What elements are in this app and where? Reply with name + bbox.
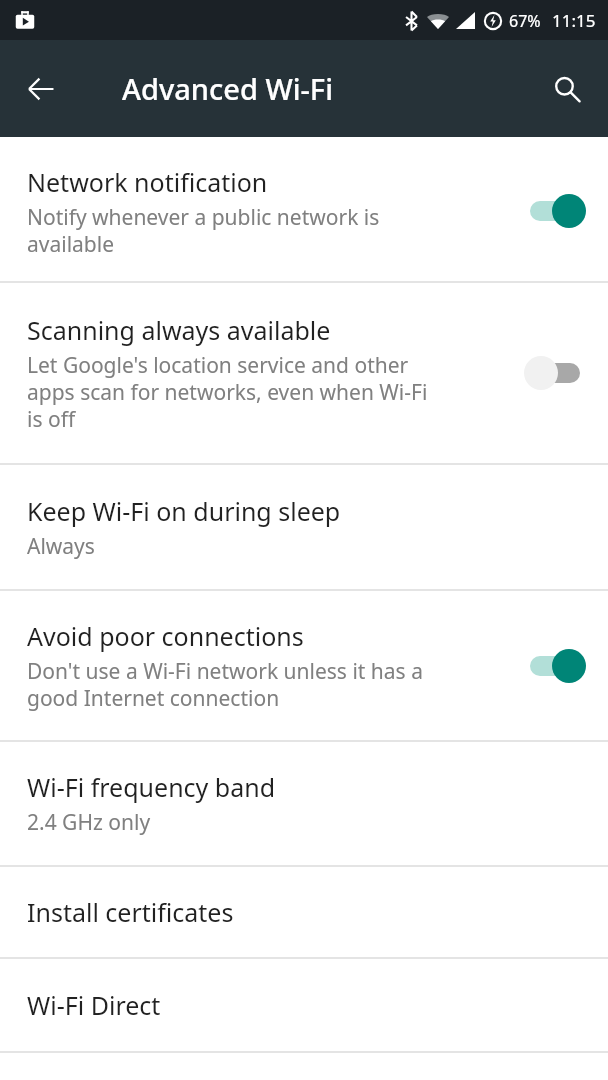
staticText: Avoid poor connections bbox=[27, 619, 304, 653]
staticText: 11:15 bbox=[552, 9, 596, 32]
button[interactable]: Scanning always available bbox=[0, 283, 608, 463]
button[interactable]: Avoid poor connections bbox=[0, 591, 608, 740]
button[interactable]: Install certificates bbox=[0, 867, 608, 957]
staticText: Let Google's location service and other … bbox=[27, 351, 428, 433]
staticText: Notify whenever a public network is avai… bbox=[27, 203, 380, 258]
button[interactable]: Keep Wi-Fi on during sleep bbox=[0, 465, 608, 589]
staticText: Wi-Fi Direct bbox=[27, 988, 161, 1022]
staticText: Network notification bbox=[27, 165, 268, 199]
staticText: Install certificates bbox=[27, 895, 234, 929]
staticText: Wi-Fi frequency band bbox=[27, 770, 276, 804]
staticText: 2.4 GHz only bbox=[27, 808, 151, 837]
staticText: Keep Wi-Fi on during sleep bbox=[27, 494, 341, 528]
staticText: Always bbox=[27, 532, 95, 561]
staticText: 67% bbox=[509, 10, 541, 32]
staticText: Scanning always available bbox=[27, 313, 331, 347]
button[interactable]: Network notification bbox=[0, 141, 608, 281]
button[interactable]: Search bbox=[538, 60, 596, 118]
button[interactable]: Wi-Fi frequency band bbox=[0, 742, 608, 865]
staticText: Don't use a Wi-Fi network unless it has … bbox=[27, 657, 423, 712]
staticText: Advanced Wi-Fi bbox=[122, 69, 334, 108]
button[interactable]: Back bbox=[12, 60, 70, 118]
button[interactable]: Wi-Fi Direct bbox=[0, 959, 608, 1051]
